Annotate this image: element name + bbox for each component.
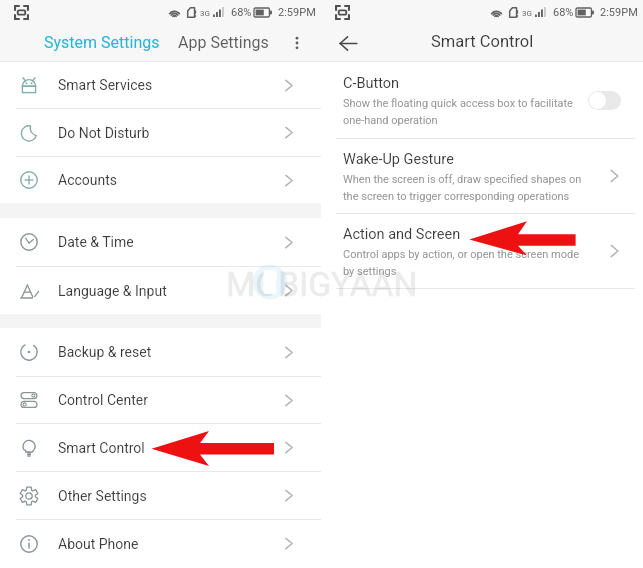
staticText: 2:59PM — [600, 6, 638, 19]
staticText: About Phone — [58, 536, 139, 552]
staticText: When the screen is off, draw specified s… — [343, 173, 582, 202]
staticText: 68% — [231, 6, 252, 19]
staticText: Smart Services — [58, 77, 153, 93]
staticText: Smart Control — [431, 32, 534, 51]
button[interactable]: About Phone — [0, 520, 321, 567]
button[interactable]: Smart Control — [0, 424, 321, 471]
button[interactable]: Wake-Up Gesture — [321, 139, 643, 213]
staticText: Do Not Disturb — [58, 125, 150, 141]
button[interactable]: Action and Screen — [321, 214, 643, 288]
staticText: Control apps by action, or open the scre… — [343, 248, 579, 277]
staticText: Smart Control — [58, 440, 145, 456]
button[interactable]: More options — [282, 28, 312, 58]
staticText: Show the floating quick access box to fa… — [343, 97, 573, 126]
button[interactable]: Screenshot — [8, 0, 34, 24]
staticText: System Settings — [44, 33, 160, 52]
button[interactable]: Other Settings — [0, 472, 321, 519]
staticText: Accounts — [58, 172, 118, 188]
staticText: App Settings — [178, 33, 269, 52]
button[interactable]: App Settings — [176, 33, 271, 52]
button[interactable]: Accounts — [0, 157, 321, 203]
staticText: C-Button — [343, 75, 400, 92]
staticText: Action and Screen — [343, 226, 461, 243]
staticText: Control Center — [58, 392, 148, 408]
staticText: 68% — [553, 6, 574, 19]
button[interactable]: Language & Input — [0, 267, 321, 314]
button[interactable]: Date & Time — [0, 218, 321, 266]
staticText: 3G — [200, 9, 210, 18]
button[interactable]: Smart Services — [0, 62, 321, 108]
button[interactable]: Back — [331, 26, 365, 60]
button[interactable]: Screenshot — [329, 0, 355, 24]
button[interactable]: C-Button — [321, 62, 643, 138]
button[interactable]: C-Button toggle — [588, 91, 621, 110]
staticText: Backup & reset — [58, 344, 152, 360]
button[interactable]: Do Not Disturb — [0, 109, 321, 156]
staticText: 2:59PM — [278, 6, 316, 19]
staticText: Wake-Up Gesture — [343, 151, 454, 168]
button[interactable]: System Settings — [42, 33, 162, 52]
staticText: Other Settings — [58, 488, 147, 504]
staticText: Date & Time — [58, 234, 134, 250]
staticText: Language & Input — [58, 283, 167, 299]
staticText: 3G — [522, 9, 532, 18]
button[interactable]: Control Center — [0, 377, 321, 423]
button[interactable]: Backup & reset — [0, 328, 321, 376]
